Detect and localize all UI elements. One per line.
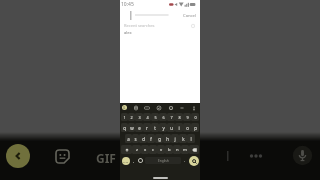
button[interactable]: Comma	[132, 157, 136, 164]
staticText: s	[134, 136, 137, 142]
button[interactable]: c	[149, 145, 157, 154]
staticText: l	[190, 136, 192, 142]
staticText: j	[174, 136, 176, 142]
button[interactable]: e	[135, 123, 143, 132]
button[interactable]: Clipboard	[179, 105, 185, 111]
staticText: t	[154, 125, 156, 131]
staticText: 7	[170, 115, 173, 120]
button[interactable]: x	[141, 145, 149, 154]
button[interactable]: Stickers	[56, 150, 69, 163]
staticText: g	[158, 136, 161, 142]
button[interactable]: Backspace	[189, 145, 199, 154]
button[interactable]: k	[179, 134, 187, 143]
button[interactable]: i	[175, 123, 183, 132]
staticText: .	[184, 158, 186, 163]
button[interactable]: z	[132, 145, 141, 154]
button[interactable]: m	[181, 145, 189, 154]
button[interactable]: a	[125, 134, 132, 143]
staticText: Cancel	[183, 13, 197, 19]
button[interactable]: d	[139, 134, 147, 143]
button[interactable]: Emoji	[138, 158, 143, 163]
button[interactable]: w	[128, 123, 135, 132]
staticText: z	[136, 147, 138, 153]
staticText: p	[194, 125, 197, 131]
button[interactable]: 1	[121, 113, 128, 121]
button[interactable]: u	[167, 123, 175, 132]
staticText: d	[142, 136, 145, 142]
button[interactable]: g	[155, 134, 163, 143]
staticText: f	[150, 136, 152, 142]
staticText: q	[123, 125, 126, 131]
staticText: n	[176, 147, 179, 153]
button[interactable]: Shift	[121, 145, 132, 154]
button[interactable]: 4	[143, 113, 151, 121]
staticText: y	[162, 125, 165, 131]
button[interactable]: Search	[189, 156, 199, 166]
button[interactable]: ?123	[122, 157, 130, 165]
button[interactable]: More options	[248, 151, 264, 161]
staticText: a	[127, 136, 130, 142]
staticText: b	[168, 147, 171, 153]
staticText: alex	[124, 30, 132, 35]
staticText: w	[130, 125, 134, 131]
button[interactable]: 7	[167, 113, 175, 121]
staticText: o	[186, 125, 189, 131]
button[interactable]: 6	[159, 113, 167, 121]
button[interactable]: q	[121, 123, 128, 132]
button[interactable]: f	[147, 134, 155, 143]
button[interactable]: n	[173, 145, 181, 154]
staticText: v	[160, 147, 163, 153]
staticText: 3	[138, 115, 141, 120]
button[interactable]: Stickers	[156, 105, 162, 111]
staticText: 8	[178, 115, 181, 120]
button[interactable]: Voice input	[191, 105, 197, 111]
staticText: Recent searches	[124, 23, 155, 28]
button[interactable]: r	[143, 123, 151, 132]
staticText: h	[166, 136, 169, 142]
button[interactable]: h	[163, 134, 171, 143]
button[interactable]: alex	[120, 29, 200, 37]
button[interactable]: s	[132, 134, 139, 143]
button[interactable]: b	[165, 145, 173, 154]
button[interactable]: v	[157, 145, 165, 154]
button[interactable]: o	[183, 123, 191, 132]
staticText: 0	[194, 115, 197, 120]
staticText: 4	[146, 115, 149, 120]
staticText: GIF	[96, 150, 116, 166]
staticText: i	[178, 125, 180, 131]
button[interactable]: 5	[151, 113, 159, 121]
button[interactable]: 9	[183, 113, 191, 121]
staticText: u	[170, 125, 173, 131]
button[interactable]: Google search	[122, 105, 127, 110]
button[interactable]: j	[171, 134, 179, 143]
button[interactable]: Clear all	[189, 22, 197, 30]
staticText: G	[123, 106, 126, 110]
button[interactable]	[128, 11, 180, 20]
button[interactable]: Period	[183, 157, 187, 164]
button[interactable]: 8	[175, 113, 183, 121]
button[interactable]: y	[159, 123, 167, 132]
button[interactable]: Themes	[133, 105, 139, 111]
button[interactable]: Microphone	[292, 145, 313, 166]
staticText: e	[138, 125, 141, 131]
staticText: m	[183, 147, 187, 153]
button[interactable]: Settings	[168, 105, 174, 111]
staticText: 6	[162, 115, 165, 120]
button[interactable]: English	[145, 157, 181, 164]
staticText: ,	[133, 158, 135, 163]
staticText: 2	[130, 115, 133, 120]
button[interactable]: p	[191, 123, 199, 132]
staticText: 1	[123, 115, 126, 120]
staticText: x	[144, 147, 147, 153]
button[interactable]: t	[151, 123, 159, 132]
button[interactable]: 0	[191, 113, 199, 121]
button[interactable]: l	[187, 134, 195, 143]
button[interactable]: Cancel	[182, 11, 198, 20]
button[interactable]: 2	[128, 113, 135, 121]
staticText: 9	[186, 115, 189, 120]
button[interactable]: Back	[6, 144, 30, 168]
button[interactable]: 3	[135, 113, 143, 121]
staticText: 5	[154, 115, 157, 120]
staticText: c	[152, 147, 155, 153]
button[interactable]: GIF	[144, 105, 150, 111]
